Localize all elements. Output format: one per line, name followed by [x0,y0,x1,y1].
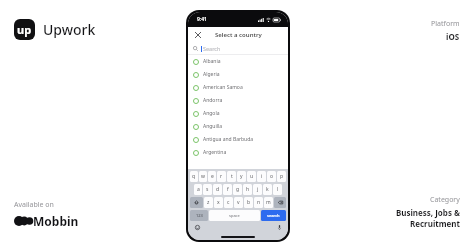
button[interactable]: Andorra [188,94,288,107]
button[interactable]: p [277,171,286,182]
staticText: Angola [203,110,220,117]
button[interactable]: z [204,197,213,208]
button[interactable]: j [253,184,262,195]
staticText: q [192,173,196,180]
staticText: iOS [446,31,460,42]
staticText: Business, Jobs & [395,207,460,218]
button[interactable]: search [261,210,286,221]
button[interactable]: f [223,184,232,195]
button[interactable]: Search [193,42,288,54]
staticText: d [216,186,220,193]
button[interactable]: g [233,184,242,195]
staticText: y [240,173,243,180]
staticText: g [236,186,240,193]
staticText: b [247,199,251,206]
button[interactable]: Dictation [275,223,283,231]
button[interactable]: e [208,171,216,182]
button[interactable]: Emoji [193,223,201,231]
staticText: Mobbin [33,213,79,229]
staticText: 123 [196,213,203,218]
staticText: s [206,186,209,193]
button[interactable]: 123 [190,210,208,221]
button[interactable]: b [244,197,253,208]
button[interactable]: m [264,197,273,208]
staticText: o [270,173,274,180]
staticText: search [267,213,280,218]
button[interactable]: s [203,184,212,195]
button[interactable]: Anguilla [188,120,288,133]
staticText: Available on [14,200,54,210]
staticText: e [211,173,214,180]
button[interactable]: American Samoa [188,81,288,94]
button[interactable]: x [214,197,223,208]
staticText: u [250,173,254,180]
button[interactable]: q [190,171,198,182]
button[interactable]: n [254,197,263,208]
staticText: Algeria [203,71,220,78]
button[interactable]: v [234,197,243,208]
staticText: x [217,199,220,206]
staticText: a [197,186,200,193]
button[interactable]: Albania [188,55,288,68]
staticText: z [207,199,210,206]
button[interactable]: d [213,184,222,195]
button[interactable]: r [217,171,226,182]
staticText: p [280,173,284,180]
button[interactable]: l [273,184,282,195]
staticText: 9:41 [197,16,207,23]
button[interactable]: Angola [188,107,288,120]
staticText: Anguilla [203,123,223,130]
staticText: k [266,186,269,193]
button[interactable]: k [263,184,272,195]
staticText: Category [430,195,460,205]
button[interactable]: space [209,210,260,221]
staticText: n [257,199,261,206]
staticText: l [277,186,279,193]
staticText: i [261,173,263,180]
staticText: m [266,199,271,206]
staticText: t [231,173,233,180]
button[interactable]: c [224,197,233,208]
staticText: w [201,173,205,180]
staticText: Albania [203,58,221,65]
staticText: space [229,213,240,218]
button[interactable]: h [243,184,252,195]
button[interactable]: y [237,171,246,182]
button[interactable]: i [257,171,266,182]
staticText: Argentina [203,149,227,156]
button[interactable]: Close [192,29,204,41]
staticText: h [246,186,250,193]
staticText: Select a country [215,31,262,39]
button[interactable]: u [247,171,256,182]
staticText: Search [203,45,221,52]
staticText: j [257,186,259,193]
button[interactable]: Delete [274,197,286,208]
button[interactable]: a [194,184,202,195]
staticText: Upwork [43,20,96,39]
staticText: Andorra [203,97,223,104]
staticText: c [227,199,230,206]
button[interactable]: w [199,171,207,182]
staticText: Recruitment [409,218,460,229]
button[interactable]: t [227,171,236,182]
button[interactable]: Argentina [188,146,288,159]
staticText: up [17,22,32,37]
staticText: f [227,186,229,193]
button[interactable]: o [267,171,276,182]
staticText: r [220,173,223,180]
button[interactable]: Shift [190,197,203,208]
staticText: Platform [431,19,460,29]
staticText: Antigua and Barbuda [203,136,254,143]
button[interactable]: Antigua and Barbuda [188,133,288,146]
staticText: v [237,199,240,206]
button[interactable]: Algeria [188,68,288,81]
staticText: American Samoa [203,84,243,91]
